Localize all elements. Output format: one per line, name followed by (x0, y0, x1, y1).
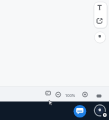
button[interactable] (95, 93, 102, 99)
button[interactable] (94, 15, 107, 28)
button[interactable] (81, 91, 88, 98)
button[interactable] (94, 2, 107, 15)
button[interactable] (44, 89, 52, 97)
button[interactable] (55, 91, 62, 98)
button[interactable] (94, 31, 106, 43)
button[interactable] (73, 104, 87, 118)
staticText: 100% (65, 93, 76, 98)
button[interactable] (93, 104, 107, 118)
